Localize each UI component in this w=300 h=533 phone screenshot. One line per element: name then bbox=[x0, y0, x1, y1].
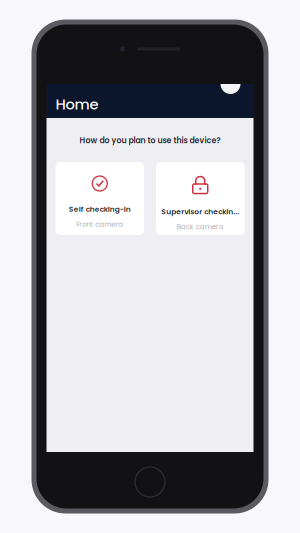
staticText: Front camera bbox=[76, 219, 123, 229]
staticText: Home bbox=[55, 94, 98, 114]
button[interactable]: Supervisor checkin... bbox=[156, 162, 244, 235]
staticText: Supervisor checkin... bbox=[161, 206, 239, 217]
button[interactable]: Home bbox=[46, 84, 253, 118]
staticText: Back camera bbox=[177, 222, 224, 232]
button[interactable]: Profile bbox=[233, 84, 253, 104]
staticText: How do you plan to use this device? bbox=[79, 135, 220, 146]
staticText: Self checking-in bbox=[69, 204, 131, 214]
button[interactable]: Self checking-in bbox=[55, 162, 144, 235]
